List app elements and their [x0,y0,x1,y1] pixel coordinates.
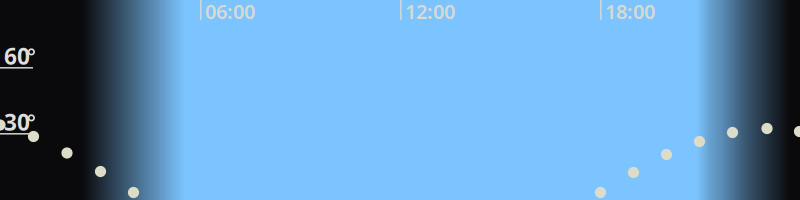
staticText: 18:00 [605,0,655,25]
staticText: 06:00 [205,0,255,25]
staticText: 30 [4,107,30,137]
staticText: 60 [4,41,30,71]
staticText: 12:00 [405,0,455,25]
